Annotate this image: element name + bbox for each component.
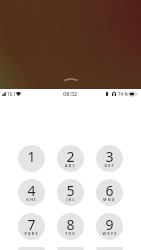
staticText: 74 % [118, 91, 128, 97]
button[interactable]: 1 [18, 145, 45, 172]
staticText: MNO [103, 197, 116, 202]
staticText: 16.1 [7, 91, 16, 97]
staticText: 6 [105, 181, 114, 200]
button[interactable]: 5 [57, 179, 84, 206]
staticText: PQRS [24, 231, 39, 236]
other: Expand call screen [64, 78, 78, 81]
staticText: WXYZ [102, 231, 118, 236]
staticText: GHI [26, 197, 37, 202]
staticText: DEF [104, 163, 115, 168]
staticText: 1 [27, 147, 36, 166]
staticText: 08:52 [63, 90, 78, 98]
button[interactable]: 3 [96, 145, 123, 172]
staticText: 9 [105, 215, 114, 234]
staticText: JKL [66, 197, 76, 202]
button[interactable]: 8 [57, 213, 84, 240]
staticText: 5 [66, 181, 75, 200]
staticText: 7 [27, 215, 36, 234]
staticText: 3 [105, 147, 114, 166]
button[interactable]: 2 [57, 145, 84, 172]
button[interactable]: 4 [18, 179, 45, 206]
staticText: 4 [27, 181, 36, 200]
staticText: ABC [65, 163, 76, 168]
staticText: TUV [65, 231, 76, 236]
staticText: 2 [66, 147, 75, 166]
staticText: 8 [66, 215, 75, 234]
button[interactable]: 6 [96, 179, 123, 206]
button[interactable]: 7 [18, 213, 45, 240]
button[interactable]: 9 [96, 213, 123, 240]
